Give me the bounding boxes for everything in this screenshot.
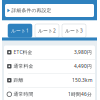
staticText: 距離 xyxy=(13,77,23,83)
staticText: 3,980円 xyxy=(74,49,92,55)
staticText: 通常時間 xyxy=(13,91,33,97)
staticText: ルート2 xyxy=(38,27,56,34)
staticText: 通常料金 xyxy=(13,63,33,69)
button[interactable]: ルート3 xyxy=(62,24,86,37)
staticText: ルート3 xyxy=(65,27,83,34)
staticText: 1時間46分 xyxy=(68,91,92,97)
button[interactable]: ルート1 xyxy=(8,24,32,37)
staticText: 4,490円 xyxy=(74,63,92,69)
staticText: 詳細条件の再設定 xyxy=(12,7,52,13)
staticText: ルート1 xyxy=(11,27,29,34)
button[interactable]: ルート2 xyxy=(35,24,59,37)
staticText: ETC料金 xyxy=(13,49,32,56)
staticText: 150.3km xyxy=(72,77,92,83)
button[interactable]: 詳細条件の再設定 xyxy=(5,4,94,17)
